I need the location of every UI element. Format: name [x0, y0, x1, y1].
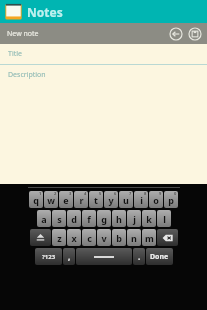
staticText: f [87, 213, 91, 225]
button[interactable]: y [104, 191, 118, 208]
staticText: i [140, 194, 143, 206]
button[interactable]: b [112, 229, 126, 246]
staticText: 1 [39, 191, 42, 196]
button[interactable]: g [97, 210, 111, 227]
button[interactable]: Shift [30, 229, 51, 246]
button[interactable]: o [149, 191, 163, 208]
staticText: Notes [27, 4, 63, 20]
staticText: b [116, 232, 122, 244]
staticText: 4 [84, 191, 87, 196]
button[interactable]: Symbols [35, 248, 62, 265]
staticText: 3 [69, 191, 72, 196]
staticText: u [123, 194, 129, 206]
staticText: z [57, 232, 62, 244]
staticText: w [47, 194, 55, 206]
staticText: h [116, 213, 122, 225]
button[interactable]: Done [146, 248, 173, 265]
staticText: 8 [144, 191, 147, 196]
button[interactable]: Space [76, 248, 132, 265]
staticText: r [79, 194, 84, 206]
staticText: m [145, 232, 154, 244]
button[interactable]: c [82, 229, 96, 246]
staticText: 0 [174, 191, 177, 196]
button[interactable]: r [74, 191, 88, 208]
button[interactable]: a [37, 210, 51, 227]
button[interactable]: e [59, 191, 73, 208]
button[interactable]: f [82, 210, 96, 227]
staticText: n [131, 232, 137, 244]
button[interactable]: x [67, 229, 81, 246]
staticText: s [57, 213, 62, 225]
button[interactable]: v [97, 229, 111, 246]
staticText: g [101, 213, 107, 225]
staticText: t [94, 194, 98, 206]
staticText: l [163, 213, 166, 225]
button[interactable]: k [142, 210, 156, 227]
staticText: , [68, 251, 71, 262]
staticText: x [71, 232, 77, 244]
staticText: 9 [159, 191, 162, 196]
staticText: p [168, 194, 174, 206]
button[interactable]: Backspace [157, 229, 178, 246]
staticText: Description [8, 70, 46, 80]
staticText: v [101, 232, 107, 244]
button[interactable]: i [134, 191, 148, 208]
button[interactable]: s [52, 210, 66, 227]
staticText: j [133, 213, 136, 225]
staticText: 7 [129, 191, 132, 196]
staticText: e [63, 194, 69, 206]
button[interactable]: Save [187, 26, 203, 42]
button[interactable]: z [52, 229, 66, 246]
staticText: New note [7, 29, 39, 39]
button[interactable]: j [127, 210, 141, 227]
staticText: Done [150, 252, 169, 262]
staticText: ?123 [42, 253, 56, 261]
staticText: 5 [99, 191, 102, 196]
staticText: a [41, 213, 47, 225]
button[interactable]: n [127, 229, 141, 246]
button[interactable]: u [119, 191, 133, 208]
button[interactable]: Comma [63, 248, 75, 265]
button[interactable]: Back [168, 26, 184, 42]
staticText: 2 [54, 191, 57, 196]
staticText: q [33, 194, 39, 206]
button[interactable]: t [89, 191, 103, 208]
staticText: d [71, 213, 77, 225]
button[interactable]: q [29, 191, 43, 208]
button[interactable]: p [164, 191, 178, 208]
button[interactable]: Period [133, 248, 145, 265]
button[interactable]: m [142, 229, 156, 246]
button[interactable]: w [44, 191, 58, 208]
staticText: o [153, 194, 159, 206]
staticText: k [146, 213, 152, 225]
staticText: Title [8, 49, 22, 59]
staticText: y [108, 194, 114, 206]
button[interactable]: h [112, 210, 126, 227]
button[interactable]: l [157, 210, 171, 227]
staticText: c [87, 232, 92, 244]
staticText: 6 [114, 191, 117, 196]
button[interactable]: d [67, 210, 81, 227]
staticText: . [138, 251, 141, 262]
